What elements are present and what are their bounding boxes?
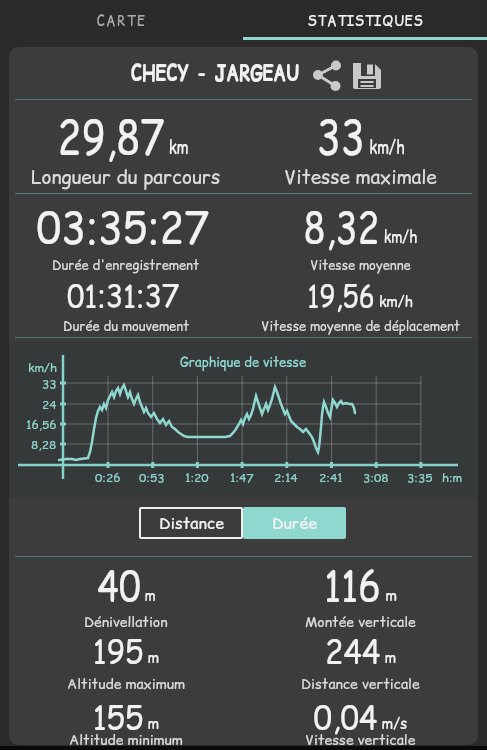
staticText: 19,56 km/h — [307, 275, 414, 317]
staticText: 0:26 — [95, 469, 121, 485]
staticText: 195 m — [93, 629, 159, 673]
button[interactable]: Distance — [139, 507, 243, 539]
staticText: 244 m — [325, 629, 396, 673]
staticText: 155 m — [93, 695, 159, 739]
staticText: km/h — [28, 359, 57, 375]
staticText: 2:14 — [274, 469, 298, 485]
button[interactable]: Durée — [243, 507, 346, 539]
staticText: 116 m — [324, 557, 397, 615]
staticText: 0:53 — [139, 469, 165, 485]
staticText: 24 — [42, 396, 57, 412]
staticText: Vitesse moyenne — [310, 256, 411, 274]
staticText: Durée du mouvement — [63, 317, 190, 335]
staticText: 3:35 — [407, 469, 433, 485]
staticText: 3:08 — [363, 469, 389, 485]
staticText: Distance verticale — [301, 674, 420, 694]
staticText: 8,28 — [31, 436, 57, 452]
staticText: 33 km/h — [317, 103, 405, 169]
staticText: Longueur du parcours — [31, 164, 221, 190]
staticText: Vitesse maximale — [284, 164, 437, 190]
staticText: 29,87 km — [57, 103, 189, 169]
staticText: 2:41 — [319, 469, 343, 485]
button[interactable]: CARTE — [0, 0, 243, 40]
staticText: 1:47 — [230, 469, 254, 485]
staticText: Graphique de vitesse — [180, 353, 307, 371]
staticText: Vitesse verticale — [305, 730, 416, 750]
button[interactable] — [306, 58, 342, 92]
staticText: 01:31:37 — [67, 275, 180, 317]
button[interactable]: STATISTIQUES — [244, 0, 487, 40]
staticText: Vitesse moyenne de déplacement — [261, 317, 460, 335]
staticText: 8,32 km/h — [303, 197, 417, 258]
button[interactable] — [350, 58, 384, 92]
staticText: CARTE — [97, 10, 146, 31]
staticText: CHECY - JARGEAU — [131, 58, 300, 89]
staticText: 0,04 m/s — [313, 695, 407, 739]
staticText: STATISTIQUES — [307, 10, 424, 31]
staticText: 03:35:27 — [36, 197, 209, 258]
staticText: 1:20 — [185, 469, 209, 485]
staticText: Altitude maximum — [67, 674, 185, 694]
staticText: Dénivellation — [84, 612, 168, 632]
staticText: Durée d'enregistrement — [52, 256, 200, 274]
staticText: Montée verticale — [305, 612, 416, 632]
staticText: 33 — [42, 375, 57, 391]
staticText: Durée — [272, 512, 318, 534]
staticText: 16,56 — [26, 416, 57, 432]
staticText: Altitude minimum — [69, 730, 183, 750]
staticText: h:m — [442, 469, 462, 485]
staticText: 40 m — [97, 557, 156, 615]
staticText: Distance — [159, 512, 224, 534]
